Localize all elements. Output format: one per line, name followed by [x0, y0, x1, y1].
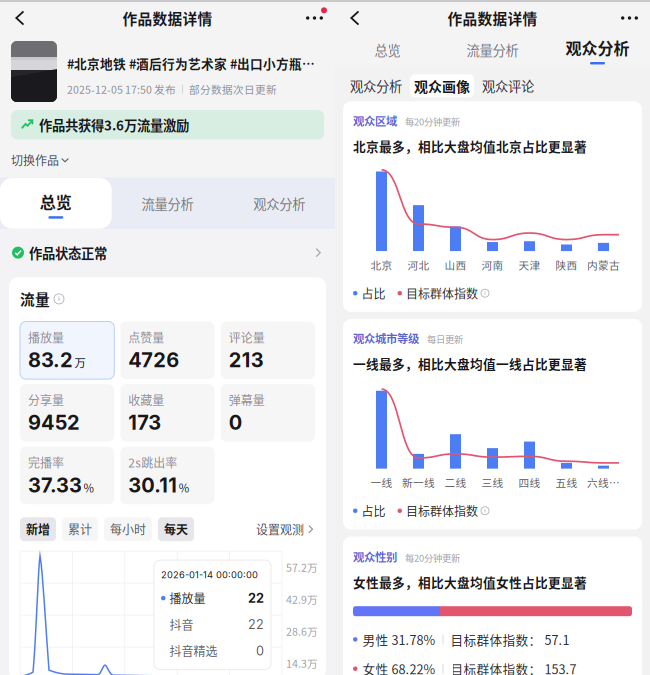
staticText: 流量分析 [141, 194, 193, 213]
staticText: 22 [248, 617, 264, 632]
button[interactable]: 流量分析 [112, 178, 223, 229]
staticText: 评论量 [229, 328, 265, 346]
staticText: 万 [74, 354, 85, 371]
staticText: 作品共获得3.6万流量激励 [39, 115, 189, 134]
staticText: 观众分析 [253, 194, 305, 213]
button[interactable]: 每小时 [104, 517, 152, 541]
staticText: 目标群体指数 [406, 284, 478, 302]
staticText: 每20分钟更新 [405, 115, 460, 128]
staticText: 播放量 [169, 589, 205, 607]
staticText: 收藏量 [128, 391, 164, 408]
staticText: 目标群体指数： 57.1 [450, 630, 569, 648]
button[interactable]: 总览 [0, 178, 112, 229]
staticText: 陕西 [555, 257, 577, 272]
staticText: 观众分析 [350, 76, 402, 95]
staticText: 内蒙古 [587, 257, 620, 272]
staticText: 作品数据详情 [447, 7, 537, 29]
staticText: 2026-01-14 00:00:00 [161, 569, 258, 580]
staticText: 0 [229, 410, 242, 435]
staticText: % [179, 479, 189, 496]
staticText: 河南 [481, 257, 503, 272]
button[interactable]: 新增 [20, 517, 56, 541]
staticText: 点赞量 [128, 328, 164, 346]
button[interactable]: 切换作品 [0, 139, 80, 178]
staticText: 六线… [587, 475, 620, 490]
staticText: 部分数据次日更新 [189, 81, 277, 97]
staticText: 观众城市等级 [353, 330, 419, 346]
button[interactable]: Back [0, 4, 41, 31]
button[interactable]: 观众分析 [545, 35, 650, 64]
staticText: 14.3万 [286, 655, 318, 671]
staticText: 男性 31.78% [362, 630, 435, 648]
staticText: 每20分钟更新 [405, 551, 460, 564]
staticText: 观众评论 [482, 76, 534, 95]
button[interactable]: 累计 [62, 517, 98, 541]
staticText: 流量 [20, 288, 50, 309]
staticText: 北京 [370, 257, 392, 272]
button[interactable]: 观众分析 [345, 74, 407, 97]
staticText: 四线 [518, 475, 540, 490]
staticText: 总览 [374, 40, 400, 59]
staticText: 每日更新 [427, 332, 463, 346]
button[interactable]: 作品状态正常 [0, 229, 335, 277]
staticText: 完播率 [28, 454, 64, 471]
button[interactable]: More options [294, 6, 335, 30]
staticText: 弹幕量 [229, 391, 265, 408]
staticText: 173 [128, 410, 161, 435]
button[interactable]: 总览 [335, 34, 440, 65]
button[interactable]: 流量分析 [440, 34, 545, 65]
staticText: 占比 [361, 284, 385, 302]
staticText: 4726 [128, 348, 179, 372]
button[interactable]: 观众评论 [477, 74, 539, 97]
staticText: 一线 [370, 475, 392, 490]
button[interactable]: 设置观测 [256, 520, 315, 538]
button[interactable]: Back [335, 4, 376, 31]
staticText: 9452 [28, 410, 80, 435]
staticText: 每天 [164, 520, 188, 538]
staticText: 总览 [40, 190, 72, 213]
staticText: 三线 [481, 475, 503, 490]
staticText: 观众画像 [414, 76, 470, 96]
staticText: 女性最多，相比大盘均值女性占比更显著 [353, 573, 587, 591]
button[interactable]: 每天 [158, 517, 194, 541]
staticText: 山西 [444, 257, 466, 272]
staticText: 37.33 [28, 473, 82, 497]
staticText: 新一线 [402, 475, 435, 490]
staticText: 播放量 [28, 328, 64, 346]
button[interactable]: 观众分析 [223, 178, 335, 229]
staticText: 二线 [444, 475, 466, 490]
staticText: 占比 [361, 502, 385, 519]
staticText: 目标群体指数 [406, 502, 478, 519]
staticText: 42.9万 [286, 591, 318, 607]
staticText: 累计 [68, 520, 92, 538]
button[interactable]: More options [609, 6, 650, 30]
staticText: 流量分析 [466, 40, 518, 59]
staticText: 抖音 [169, 616, 193, 633]
staticText: 一线最多，相比大盘均值一线占比更显著 [353, 354, 587, 373]
staticText: 0 [256, 643, 264, 658]
staticText: 57.2万 [286, 559, 318, 575]
staticText: 女性 68.22% [362, 659, 435, 675]
staticText: 目标群体指数： 153.7 [450, 659, 576, 675]
staticText: 28.6万 [286, 623, 318, 639]
staticText: 30.11 [128, 473, 177, 497]
staticText: 天津 [518, 257, 540, 272]
staticText: 83.2 [28, 348, 73, 372]
staticText: 观众性别 [353, 548, 397, 565]
staticText: 设置观测 [256, 520, 304, 538]
staticText: % [83, 479, 93, 496]
staticText: 切换作品 [11, 151, 59, 169]
staticText: 作品状态正常 [29, 243, 107, 262]
staticText: 作品数据详情 [122, 7, 212, 29]
staticText: 五线 [555, 475, 577, 490]
staticText: 抖音精选 [169, 642, 217, 660]
staticText: 新增 [26, 520, 50, 538]
staticText: 观众区域 [353, 112, 397, 129]
staticText: 河北 [407, 257, 429, 272]
staticText: 北京最多，相比大盘均值北京占比更显著 [353, 137, 587, 155]
staticText: 每小时 [110, 520, 146, 538]
staticText: 2s跳出率 [128, 454, 177, 471]
staticText: 2025-12-05 17:50 发布 [67, 81, 176, 97]
button[interactable]: 观众画像 [410, 74, 474, 97]
staticText: 分享量 [28, 391, 64, 408]
